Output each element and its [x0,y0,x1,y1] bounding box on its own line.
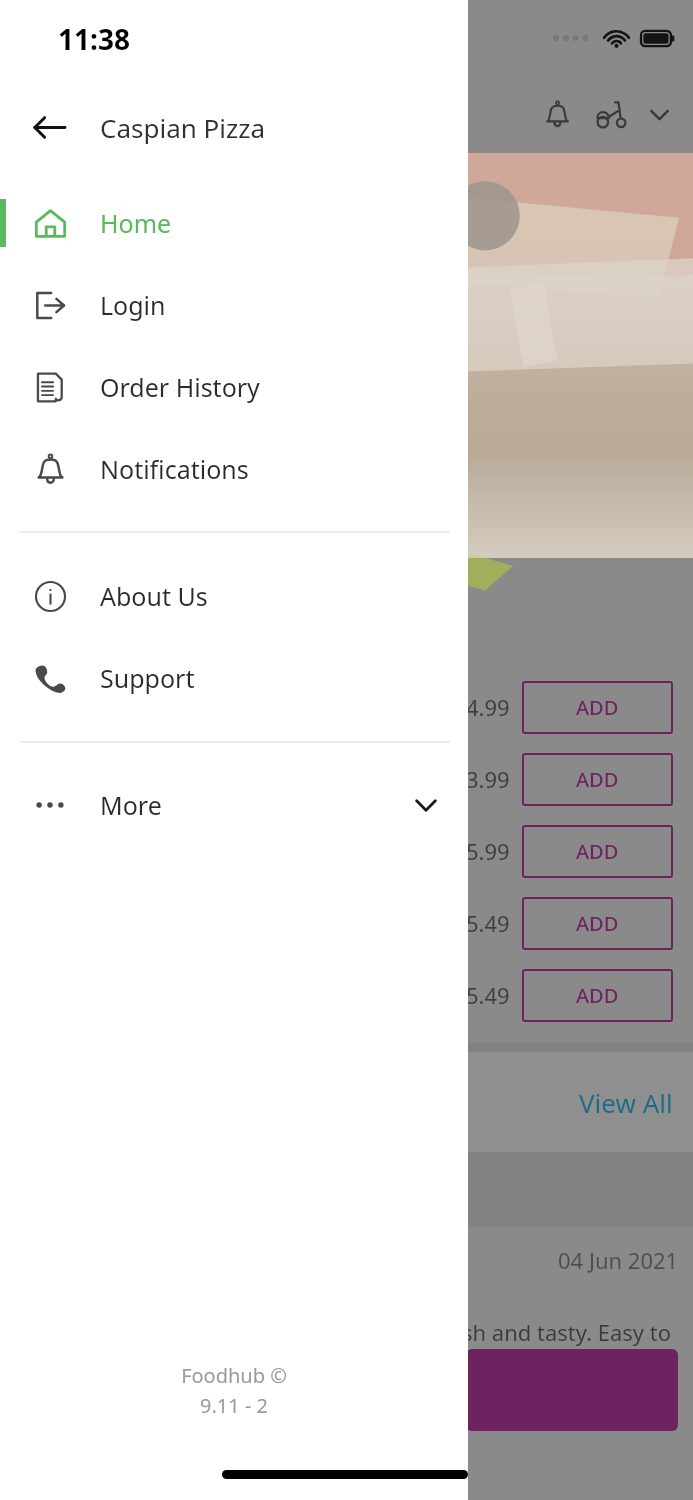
staticText: Home [100,206,172,240]
button[interactable]: More [0,772,468,838]
button[interactable] [466,1349,678,1431]
staticText: 4.99 [466,692,510,722]
button[interactable]: ADD [522,897,673,950]
button[interactable]: Expand [637,92,681,136]
staticText: More [100,788,162,822]
button[interactable]: ADD [522,969,673,1022]
staticText: ADD [576,910,619,937]
staticText: sh and tasty. Easy to [462,1317,672,1347]
staticText: Support [100,661,195,695]
staticText: 04 Jun 2021 [558,1245,679,1275]
staticText: 5.99 [466,836,510,866]
button[interactable]: Notifications [0,436,468,502]
button[interactable]: ADD [522,681,673,734]
button[interactable]: Delivery options [587,90,635,138]
button[interactable]: 5.49 [466,964,673,1026]
button[interactable]: 4.99 [466,676,673,738]
staticText: ADD [576,982,619,1009]
staticText: 11:38 [58,20,130,58]
staticText: ADD [576,694,619,721]
button[interactable]: Login [0,272,468,338]
button[interactable]: About Us [0,563,468,629]
button[interactable]: ADD [522,753,673,806]
button[interactable]: ADD [522,825,673,878]
button[interactable]: 3.99 [466,748,673,810]
staticText: Login [100,288,166,322]
staticText: 5.49 [466,980,510,1010]
staticText: 9.11 - 2 [200,1392,268,1419]
staticText: Notifications [100,452,249,486]
staticText: About Us [100,579,208,613]
staticText: ADD [576,766,619,793]
button[interactable]: 5.49 [466,892,673,954]
button[interactable]: View All [569,1075,683,1130]
staticText: Order History [100,370,260,404]
button[interactable]: Order History [0,354,468,420]
staticText: View All [579,1085,673,1120]
staticText: ADD [576,838,619,865]
button[interactable]: Notifications [533,90,581,138]
staticText: 5.49 [466,908,510,938]
staticText: Caspian Pizza [100,110,266,145]
staticText: Foodhub © [181,1362,287,1389]
button[interactable]: Support [0,645,468,711]
staticText: 3.99 [466,764,510,794]
button[interactable]: 5.99 [466,820,673,882]
button[interactable]: Home [0,190,468,256]
button[interactable]: Back [22,100,76,154]
